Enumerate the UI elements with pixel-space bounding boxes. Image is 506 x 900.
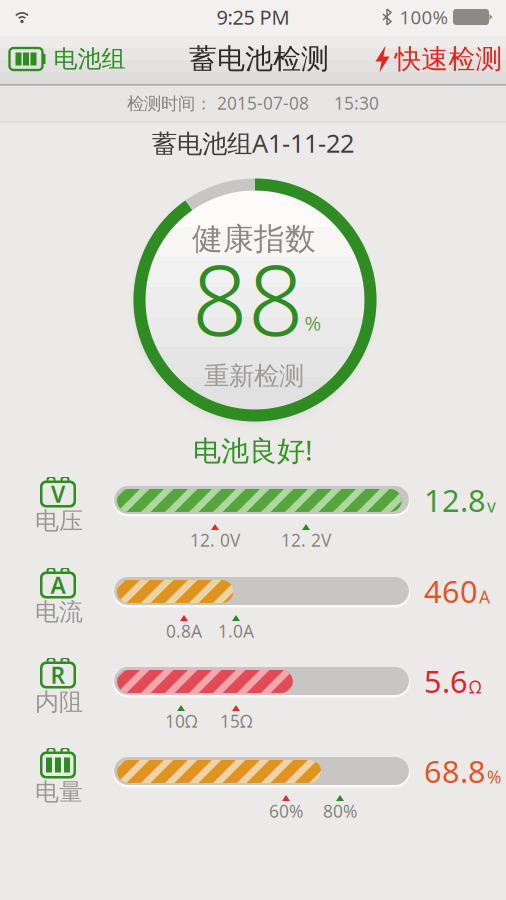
staticText: 电流 <box>35 597 83 627</box>
staticText: 80% <box>323 799 357 822</box>
staticText: 蓄电池组A1-11-22 <box>152 126 354 160</box>
staticText: v <box>487 494 496 517</box>
staticText: 100% <box>399 5 448 29</box>
staticText: 5.6 <box>424 661 468 701</box>
staticText: 68.8 <box>424 751 486 791</box>
staticText: A <box>50 570 65 600</box>
staticText: 内阻 <box>35 687 83 717</box>
staticText: Ω <box>469 675 481 698</box>
staticText: 1.0A <box>218 619 254 642</box>
button[interactable]: 重新检测 <box>204 360 304 391</box>
staticText: 12. 2V <box>281 528 331 551</box>
staticText: 健康指数 <box>192 220 316 258</box>
button[interactable]: 快速检测 <box>375 35 502 83</box>
staticText: 检测时间： 2015-07-08 15:30 <box>127 91 379 114</box>
staticText: 15Ω <box>220 709 252 732</box>
staticText: 电池良好! <box>193 431 313 469</box>
staticText: % <box>304 310 321 336</box>
staticText: 460 <box>424 571 478 611</box>
staticText: R <box>50 660 65 690</box>
staticText: 电量 <box>35 777 83 807</box>
staticText: A <box>479 585 490 608</box>
staticText: 电池组 <box>53 44 125 74</box>
staticText: 88 <box>192 233 304 363</box>
staticText: V <box>51 479 65 509</box>
staticText: % <box>487 765 501 788</box>
staticText: 60% <box>269 799 303 822</box>
staticText: 9:25 PM <box>216 4 289 30</box>
staticText: 快速检测 <box>394 43 502 75</box>
staticText: 电压 <box>35 506 83 536</box>
staticText: 蓄电池检测 <box>189 42 329 76</box>
staticText: 10Ω <box>165 709 197 732</box>
staticText: 12. 0V <box>190 528 240 551</box>
staticText: 12.8 <box>424 480 486 520</box>
staticText: 重新检测 <box>204 360 304 391</box>
button[interactable]: 电池组 <box>8 35 125 83</box>
staticText: 0.8A <box>166 619 202 642</box>
